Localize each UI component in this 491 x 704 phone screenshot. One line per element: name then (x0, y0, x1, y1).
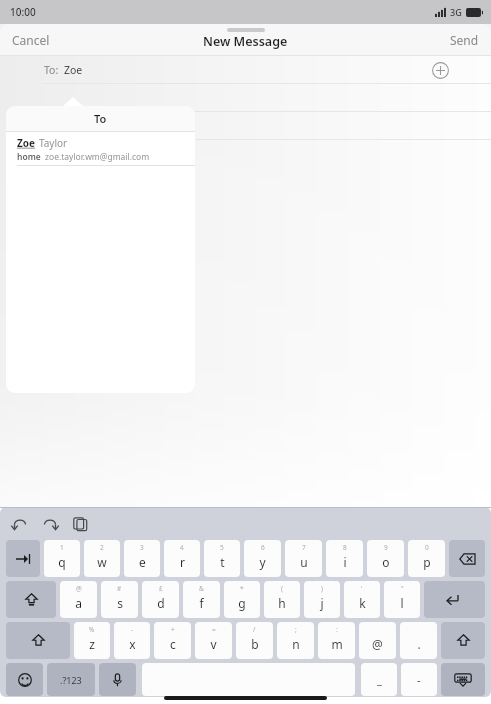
staticText: u (300, 554, 308, 570)
button[interactable]: £ (142, 581, 179, 618)
staticText: 3G (450, 6, 462, 18)
staticText: v (210, 636, 217, 652)
button[interactable]: Undo (10, 514, 30, 534)
staticText: h (278, 595, 286, 611)
button[interactable]: Tab (6, 540, 40, 577)
staticText: + (171, 625, 175, 634)
button[interactable]: / (236, 622, 273, 659)
staticText: @ (372, 636, 383, 652)
button[interactable]: Hide keyboard (441, 663, 485, 696)
staticText: # (117, 584, 122, 593)
button[interactable]: " (384, 581, 420, 618)
staticText: q (58, 554, 66, 570)
staticText: .?123 (60, 674, 82, 686)
staticText: g (238, 595, 246, 611)
button[interactable]: ; (277, 622, 314, 659)
button[interactable]: Zoe (6, 132, 195, 165)
button[interactable]: _ (361, 663, 397, 696)
staticText: e (139, 554, 146, 570)
button[interactable]: 8 (326, 540, 363, 577)
staticText: New Message (203, 33, 288, 50)
button[interactable]: Shift (441, 622, 485, 659)
staticText: z (89, 636, 95, 652)
staticText: 5 (220, 543, 224, 552)
staticText: j (320, 595, 324, 611)
staticText: ; (295, 625, 297, 634)
staticText: 0 (425, 543, 429, 552)
button[interactable]: Paste (70, 514, 90, 534)
button[interactable]: : (318, 622, 355, 659)
button[interactable]: # (101, 581, 138, 618)
staticText: ( (281, 584, 283, 593)
staticText: To: (44, 63, 59, 77)
staticText: " (401, 584, 404, 593)
staticText: 1 (60, 543, 64, 552)
button[interactable]: Return (424, 581, 485, 618)
button[interactable]: Redo (40, 514, 60, 534)
button[interactable]: . (400, 622, 437, 659)
button[interactable]: 4 (164, 540, 200, 577)
button[interactable]: Add contact (429, 59, 451, 81)
staticText: r (180, 554, 185, 570)
button[interactable]: = (195, 622, 232, 659)
staticText: y (259, 554, 266, 570)
staticText: Zoe (17, 136, 36, 150)
staticText: 4 (180, 543, 184, 552)
button[interactable]: Delete (449, 540, 485, 577)
button[interactable]: 6 (244, 540, 281, 577)
button[interactable]: * (224, 581, 260, 618)
staticText: o (382, 554, 390, 570)
staticText: ) (321, 584, 323, 593)
button[interactable]: - (401, 663, 437, 696)
staticText: f (199, 595, 204, 611)
button[interactable]: @ (359, 622, 396, 659)
button[interactable]: ) (304, 581, 340, 618)
button[interactable]: + (154, 622, 191, 659)
button[interactable]: - (114, 622, 150, 659)
staticText: 3 (140, 543, 144, 552)
button[interactable]: Dictate (99, 663, 136, 696)
staticText: 9 (384, 543, 388, 552)
staticText: 10:00 (10, 5, 36, 19)
staticText: Send (450, 32, 479, 48)
button[interactable]: Send (442, 28, 487, 52)
staticText: t (220, 554, 225, 570)
button[interactable]: Cancel (4, 28, 58, 52)
staticText: 7 (302, 543, 306, 552)
staticText: m (331, 636, 343, 652)
button[interactable]: 2 (84, 540, 120, 577)
staticText: s (117, 595, 123, 611)
staticText: : (336, 625, 338, 634)
staticText: _ (377, 672, 382, 687)
staticText: p (423, 554, 431, 570)
button[interactable]: 1 (44, 540, 80, 577)
staticText: b (251, 636, 259, 652)
button[interactable]: 7 (285, 540, 322, 577)
button[interactable]: Emoji (6, 663, 43, 696)
staticText: % (89, 625, 95, 634)
staticText: 2 (100, 543, 104, 552)
staticText: @ (76, 584, 82, 593)
button[interactable]: 5 (204, 540, 240, 577)
button[interactable]: @ (60, 581, 97, 618)
staticText: l (400, 595, 404, 611)
button[interactable]: 0 (408, 540, 445, 577)
button[interactable]: 9 (367, 540, 404, 577)
staticText: Cancel (12, 32, 50, 48)
button[interactable]: .?123 (47, 663, 95, 696)
staticText: 6 (261, 543, 265, 552)
staticText: * (240, 584, 244, 593)
button[interactable]: % (74, 622, 110, 659)
button[interactable]: ( (264, 581, 300, 618)
staticText: zoe.taylor.wm@gmail.com (45, 151, 150, 163)
button[interactable]: Shift (6, 622, 70, 659)
button[interactable]: & (183, 581, 220, 618)
button[interactable]: Shift (6, 581, 56, 618)
button[interactable]: ' (344, 581, 380, 618)
staticText: To (94, 111, 107, 126)
staticText: Taylor (39, 136, 68, 150)
staticText: i (343, 554, 347, 570)
button[interactable]: 3 (124, 540, 160, 577)
staticText: d (157, 595, 165, 611)
